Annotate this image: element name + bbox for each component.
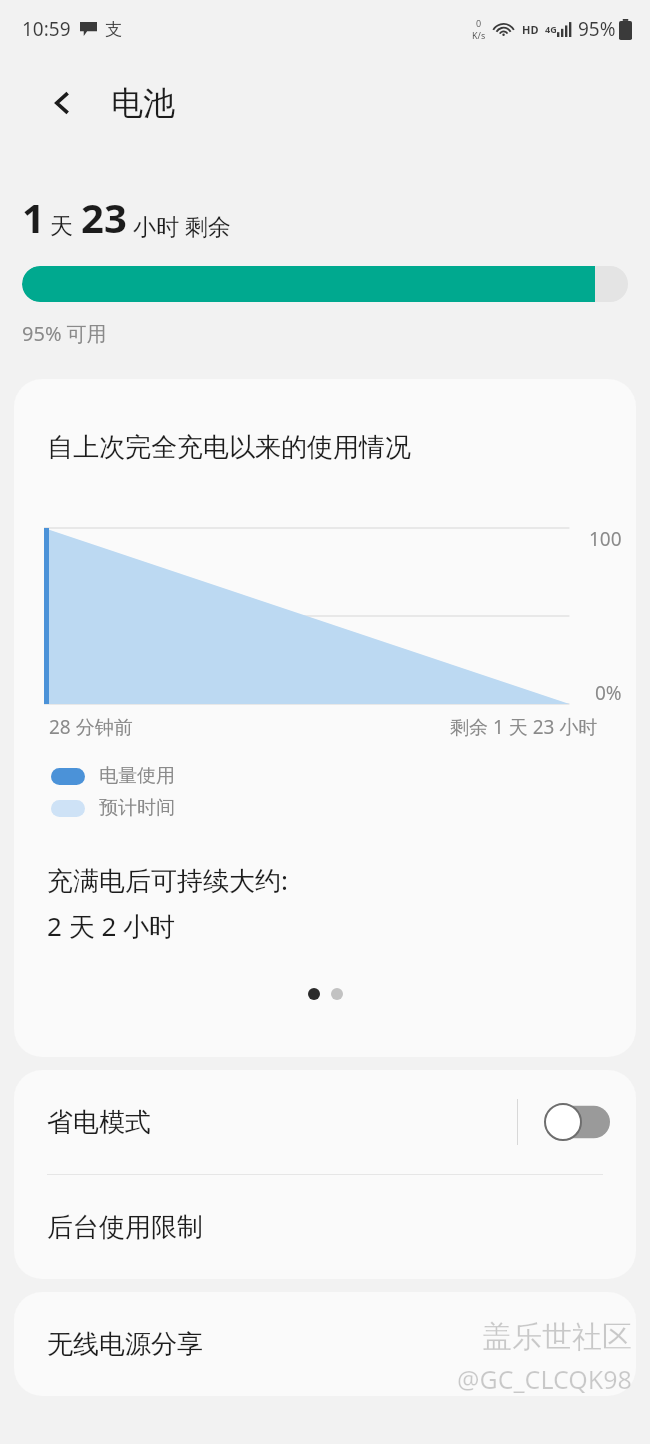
button[interactable]: 省电模式 toggle xyxy=(544,1103,610,1141)
staticText: 4G xyxy=(545,23,557,35)
staticText: 0% xyxy=(595,680,622,706)
staticText: 2 天 2 小时 xyxy=(47,908,176,944)
button[interactable]: 后台使用限制 xyxy=(14,1175,636,1279)
staticText: 支 xyxy=(105,19,122,40)
button[interactable]: 省电模式 xyxy=(14,1070,636,1174)
staticText: 充满电后可持续大约: xyxy=(47,862,288,898)
staticText: 电池 xyxy=(111,83,175,123)
staticText: 后台使用限制 xyxy=(47,1211,203,1244)
staticText: K/s xyxy=(472,29,486,41)
staticText: 95% 可用 xyxy=(22,320,107,347)
staticText: 剩余 1 天 23 小时 xyxy=(450,714,598,740)
staticText: 小时 剩余 xyxy=(133,210,231,241)
button[interactable]: Page 2 xyxy=(331,988,343,1000)
staticText: 电量使用 xyxy=(99,764,175,788)
staticText: 盖乐世社区 xyxy=(482,1318,632,1356)
staticText: 1 xyxy=(22,190,45,244)
staticText: 23 xyxy=(81,190,127,244)
staticText: 10:59 xyxy=(22,16,71,42)
staticText: 预计时间 xyxy=(99,796,175,820)
staticText: 95% xyxy=(578,16,616,42)
staticText: HD xyxy=(522,22,539,37)
staticText: 自上次完全充电以来的使用情况 xyxy=(47,431,411,464)
staticText: 0 xyxy=(476,17,482,29)
staticText: @GC_CLCQK98 xyxy=(457,1362,632,1396)
staticText: 天 xyxy=(50,212,73,241)
button[interactable]: Page 1 xyxy=(308,988,320,1000)
button[interactable]: Back xyxy=(40,80,86,126)
button[interactable]: 无线电源分享 xyxy=(14,1292,636,1396)
staticText: 100 xyxy=(589,526,622,552)
staticText: 省电模式 xyxy=(47,1106,151,1139)
staticText: 28 分钟前 xyxy=(49,714,133,740)
staticText: 无线电源分享 xyxy=(47,1328,203,1361)
